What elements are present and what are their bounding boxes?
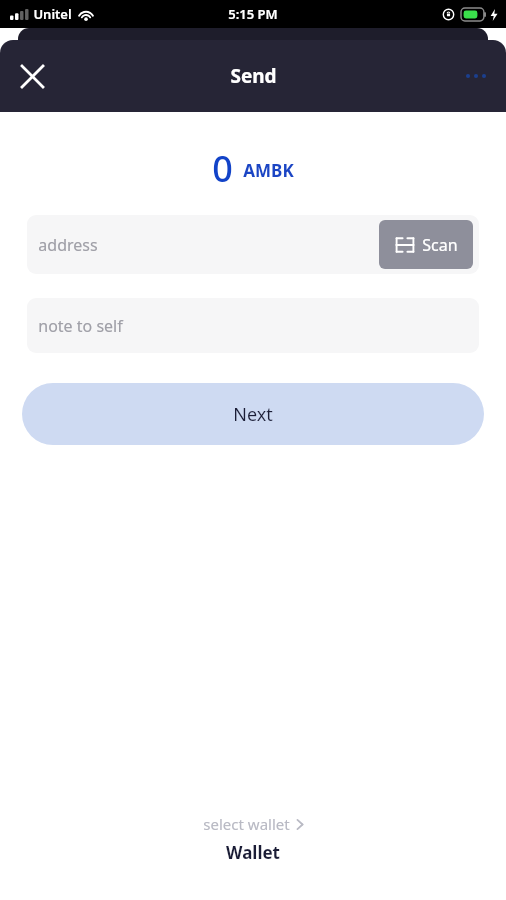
staticText: Unitel	[33, 5, 72, 23]
button[interactable]: note to self	[27, 298, 479, 353]
button[interactable]: Scan	[379, 220, 473, 269]
staticText: 0	[212, 144, 233, 193]
staticText: 5:15 PM	[228, 5, 278, 23]
staticText: Wallet	[226, 841, 280, 864]
button[interactable]: Close	[10, 54, 54, 98]
staticText: select wallet	[203, 814, 290, 834]
button[interactable]: Next	[22, 383, 484, 445]
button[interactable]: address	[27, 215, 479, 274]
staticText: Next	[233, 402, 273, 427]
button[interactable]: select wallet	[0, 814, 506, 900]
staticText: note to self	[38, 315, 123, 337]
button[interactable]: More options	[454, 54, 498, 98]
staticText: Scan	[422, 234, 458, 256]
staticText: AMBK	[243, 159, 294, 182]
staticText: address	[38, 234, 98, 256]
staticText: Send	[230, 63, 277, 89]
